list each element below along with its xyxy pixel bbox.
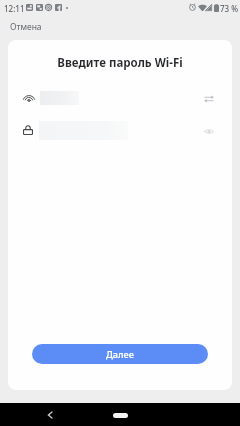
button[interactable]: Show password xyxy=(8,118,232,144)
button[interactable]: Back xyxy=(41,406,59,424)
button[interactable]: Change network xyxy=(8,85,232,111)
staticText: Введите пароль Wi-Fi xyxy=(57,55,183,71)
staticText: 73 % xyxy=(220,3,239,14)
button[interactable]: Далее xyxy=(32,344,208,364)
staticText: Отмена xyxy=(10,21,42,33)
button[interactable]: Отмена xyxy=(0,18,48,35)
button[interactable]: Show password xyxy=(198,120,220,142)
staticText: Далее xyxy=(106,348,134,361)
button[interactable]: Change network xyxy=(198,88,220,110)
button[interactable]: Home xyxy=(98,407,142,423)
staticText: 12:11 xyxy=(4,3,25,14)
